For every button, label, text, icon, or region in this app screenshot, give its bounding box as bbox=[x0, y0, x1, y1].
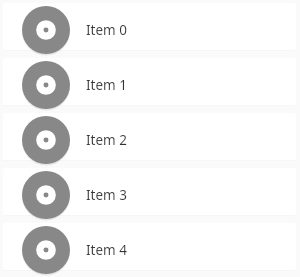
button[interactable]: Disc for Item 3 bbox=[0, 168, 300, 223]
other: Disc for Item 1 bbox=[22, 61, 70, 109]
button[interactable]: Disc for Item 2 bbox=[0, 113, 300, 168]
other: Disc for Item 4 bbox=[22, 226, 70, 274]
staticText: Item 4 bbox=[86, 241, 127, 259]
staticText: Item 1 bbox=[86, 76, 127, 94]
button[interactable]: Disc for Item 4 bbox=[0, 223, 300, 277]
other: Disc for Item 2 bbox=[22, 116, 70, 164]
staticText: Item 2 bbox=[86, 131, 127, 149]
other: Disc for Item 0 bbox=[22, 6, 70, 54]
staticText: Item 3 bbox=[86, 186, 127, 204]
staticText: Item 0 bbox=[86, 21, 127, 39]
other: Disc for Item 3 bbox=[22, 171, 70, 219]
button[interactable]: Disc for Item 1 bbox=[0, 58, 300, 113]
button[interactable]: Disc for Item 0 bbox=[0, 3, 300, 58]
